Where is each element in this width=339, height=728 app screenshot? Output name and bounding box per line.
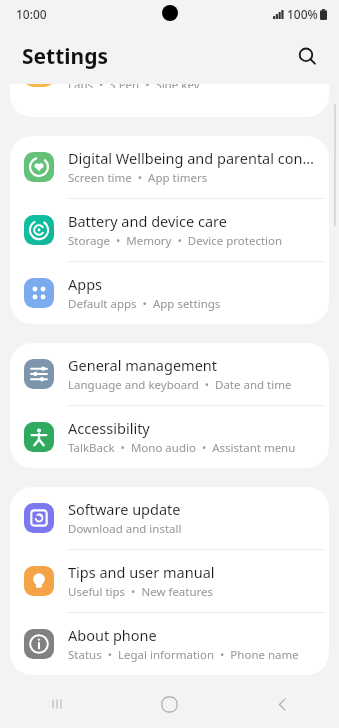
staticText: General management <box>68 355 218 375</box>
staticText: Labs • S Pen • Side key <box>68 84 200 88</box>
button[interactable]: About phone <box>10 613 329 675</box>
staticText: Useful tips • New features <box>68 584 214 600</box>
staticText: Battery and device care <box>68 211 227 231</box>
staticText: Screen time • App timers <box>68 170 208 186</box>
button[interactable]: Home <box>113 680 226 728</box>
staticText: TalkBack • Mono audio • Assistant menu <box>68 440 296 456</box>
button[interactable]: General management <box>10 343 329 405</box>
staticText: Accessibility <box>68 418 150 438</box>
staticText: Status • Legal information • Phone name <box>68 647 299 663</box>
button[interactable]: Accessibility <box>10 406 329 468</box>
button[interactable]: Apps <box>10 262 329 324</box>
staticText: Apps <box>68 274 103 294</box>
button[interactable]: Recent apps <box>0 680 113 728</box>
staticText: Default apps • App settings <box>68 296 221 312</box>
button[interactable]: Battery and device care <box>10 199 329 261</box>
staticText: Language and keyboard • Date and time <box>68 377 292 393</box>
staticText: 10:00 <box>16 6 47 22</box>
staticText: Software update <box>68 499 181 519</box>
button[interactable]: Software update <box>10 487 329 549</box>
button[interactable]: Search <box>285 34 329 78</box>
staticText: 100% <box>287 6 318 22</box>
button[interactable]: Advanced features <box>10 84 329 117</box>
staticText: About phone <box>68 625 157 645</box>
button[interactable]: Digital Wellbeing and parental controls <box>10 136 329 198</box>
staticText: Download and install <box>68 521 182 537</box>
staticText: Settings <box>22 42 109 71</box>
button[interactable]: Back <box>226 680 339 728</box>
staticText: Digital Wellbeing and parental controls <box>68 148 319 168</box>
button[interactable]: Tips and user manual <box>10 550 329 612</box>
staticText: Storage • Memory • Device protection <box>68 233 283 249</box>
staticText: Tips and user manual <box>68 562 215 582</box>
